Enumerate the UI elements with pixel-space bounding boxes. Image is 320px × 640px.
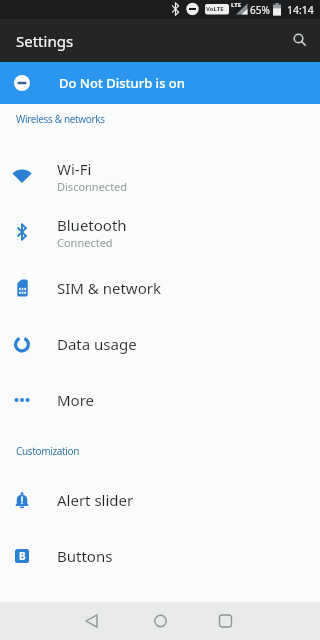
button[interactable]: Do Not Disturb is on: [0, 62, 320, 104]
staticText: Connected: [57, 235, 113, 250]
staticText: LTE: [231, 1, 242, 9]
staticText: VoLTE: [206, 5, 224, 13]
button[interactable]: [277, 19, 320, 62]
staticText: B: [19, 549, 26, 563]
button[interactable]: B: [0, 528, 320, 584]
staticText: Wi-Fi: [57, 159, 92, 179]
staticText: Bluetooth: [57, 215, 127, 235]
button[interactable]: More: [0, 372, 320, 428]
staticText: Do Not Disturb is on: [59, 74, 185, 92]
staticText: More: [57, 390, 95, 410]
staticText: 14:14: [287, 3, 314, 17]
staticText: Settings: [16, 31, 74, 51]
button[interactable]: Bluetooth: [0, 204, 320, 260]
button[interactable]: Data usage: [0, 316, 320, 372]
staticText: Wireless & networks: [16, 112, 105, 126]
button[interactable]: [0, 602, 106, 640]
staticText: SIM & network: [57, 278, 161, 298]
staticText: Buttons: [57, 546, 113, 566]
staticText: 65%: [250, 3, 270, 17]
staticText: Data usage: [57, 334, 137, 354]
staticText: Customization: [16, 444, 80, 458]
button[interactable]: [106, 602, 213, 640]
button[interactable]: Wi-Fi: [0, 148, 320, 204]
button[interactable]: SIM & network: [0, 260, 320, 316]
button[interactable]: Alert slider: [0, 472, 320, 528]
staticText: Disconnected: [57, 179, 128, 194]
staticText: Alert slider: [57, 490, 134, 510]
button[interactable]: [213, 602, 320, 640]
